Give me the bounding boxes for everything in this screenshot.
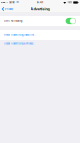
staticText: Reset Advertising Identifier… (4, 33, 36, 36)
staticText: LTE (16, 1, 19, 4)
staticText: About Advertising & Privacy… (4, 42, 35, 45)
staticText: 100% (67, 1, 72, 4)
staticText: Advertising (30, 7, 49, 11)
staticText: Limit Ad Tracking (4, 20, 22, 22)
button[interactable]: Limit Ad Tracking (0, 16, 80, 26)
button[interactable]: Reset Advertising Identifier… (0, 30, 80, 40)
button[interactable]: Privacy (0, 5, 14, 13)
staticText: 9:41 (37, 1, 43, 4)
staticText: Privacy (5, 7, 13, 10)
button[interactable]: About Advertising & Privacy… (0, 40, 80, 46)
staticText: Carrier (9, 1, 15, 4)
